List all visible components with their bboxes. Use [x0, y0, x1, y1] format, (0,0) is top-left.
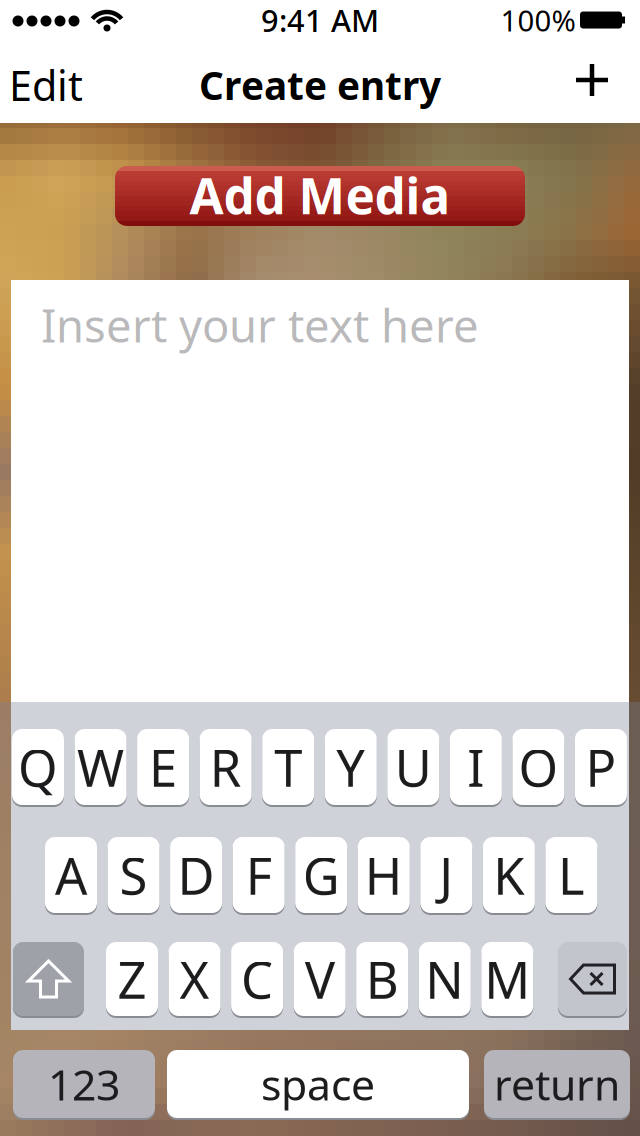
button[interactable]: S [108, 836, 160, 914]
staticText: N [425, 945, 464, 1013]
button[interactable]: D [170, 836, 222, 914]
button[interactable]: V [294, 941, 346, 1017]
staticText: Insert your text here [41, 295, 479, 355]
button[interactable] [570, 58, 614, 102]
button[interactable] [11, 280, 629, 1030]
button[interactable]: M [481, 941, 533, 1017]
button[interactable]: return [484, 1049, 630, 1119]
button[interactable]: Q [12, 728, 64, 806]
staticText: O [518, 733, 558, 801]
button[interactable]: Edit [9, 58, 83, 112]
button[interactable]: G [295, 836, 347, 914]
button[interactable]: E [137, 728, 189, 806]
staticText: M [484, 945, 530, 1013]
button[interactable]: space [167, 1049, 469, 1119]
button[interactable]: X [169, 941, 221, 1017]
button[interactable]: J [420, 836, 472, 914]
button[interactable]: Add Media [115, 166, 525, 226]
staticText: X [180, 945, 210, 1013]
button[interactable] [558, 942, 627, 1016]
button[interactable]: Z [106, 941, 158, 1017]
staticText: 100% [500, 0, 575, 39]
button[interactable]: Y [325, 728, 377, 806]
button[interactable]: K [483, 836, 535, 914]
staticText: Add Media [189, 162, 450, 228]
button[interactable]: A [45, 836, 97, 914]
staticText: W [77, 733, 124, 801]
button[interactable]: C [231, 941, 283, 1017]
button[interactable]: W [74, 728, 126, 806]
staticText: F [246, 841, 272, 909]
button[interactable]: H [358, 836, 410, 914]
staticText: H [365, 841, 403, 909]
staticText: I [467, 733, 484, 801]
staticText: 123 [48, 1056, 120, 1112]
staticText: L [558, 841, 585, 909]
staticText: D [178, 841, 215, 909]
button[interactable]: P [575, 728, 627, 806]
staticText: T [274, 733, 302, 801]
button[interactable]: F [233, 836, 285, 914]
staticText: G [303, 841, 340, 909]
button[interactable]: O [512, 728, 564, 806]
staticText: U [395, 733, 432, 801]
staticText: space [261, 1056, 375, 1112]
button[interactable]: N [419, 941, 471, 1017]
staticText: B [366, 945, 399, 1013]
button[interactable]: U [387, 728, 439, 806]
staticText: V [305, 945, 335, 1013]
staticText: return [494, 1056, 620, 1112]
button[interactable]: B [356, 941, 408, 1017]
staticText: S [120, 841, 148, 909]
button[interactable]: L [545, 836, 597, 914]
staticText: E [149, 733, 177, 801]
button[interactable]: I [450, 728, 502, 806]
staticText: K [493, 841, 524, 909]
button[interactable] [13, 942, 84, 1016]
staticText: A [55, 841, 87, 909]
staticText: P [585, 733, 616, 801]
staticText: J [439, 841, 453, 909]
staticText: Z [117, 945, 146, 1013]
staticText: Q [18, 733, 58, 801]
button[interactable]: T [262, 728, 314, 806]
staticText: Y [336, 733, 365, 801]
button[interactable]: R [200, 728, 252, 806]
staticText: Edit [9, 58, 83, 112]
staticText: R [210, 733, 242, 801]
button[interactable]: 123 [13, 1049, 155, 1119]
staticText: C [241, 945, 273, 1013]
staticText: Create entry [199, 59, 441, 111]
staticText: 9:41 AM [261, 0, 379, 40]
